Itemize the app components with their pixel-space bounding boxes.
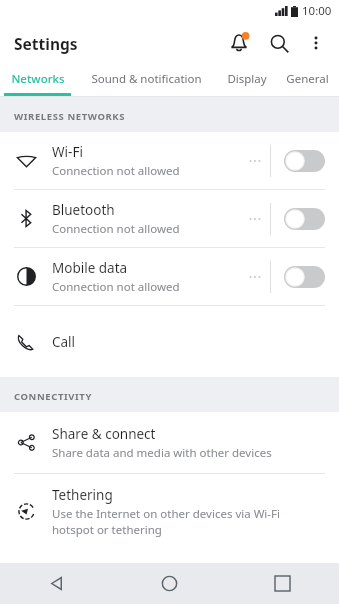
- button[interactable]: Search: [259, 23, 299, 63]
- button[interactable]: Networks: [0, 65, 75, 96]
- staticText: Wi-Fi: [52, 143, 83, 161]
- staticText: Connection not allowed: [52, 279, 180, 295]
- button[interactable]: Mobile data toggle: [284, 266, 325, 288]
- staticText: Settings: [14, 33, 78, 54]
- staticText: Use the Internet on other devices via Wi…: [52, 506, 309, 537]
- staticText: Connection not allowed: [52, 163, 180, 179]
- button[interactable]: Share & connect: [0, 412, 339, 473]
- button[interactable]: Sound & notification: [75, 65, 218, 96]
- staticText: 10:00: [302, 3, 332, 19]
- button[interactable]: Bluetooth toggle: [284, 208, 325, 230]
- staticText: WIRELESS NETWORKS: [14, 110, 126, 123]
- button[interactable]: Home: [113, 563, 226, 604]
- staticText: General: [286, 71, 329, 87]
- button[interactable]: Notifications: [219, 23, 259, 63]
- button[interactable]: More options: [299, 26, 333, 60]
- staticText: Share & connect: [52, 425, 156, 443]
- staticText: Tethering: [52, 486, 113, 504]
- staticText: Share data and media with other devices: [52, 445, 272, 461]
- button[interactable]: Wi-Fi: [0, 132, 339, 189]
- button[interactable]: Back: [0, 563, 113, 604]
- button[interactable]: Tethering: [0, 474, 339, 549]
- staticText: Networks: [11, 71, 65, 87]
- staticText: Call: [52, 333, 76, 351]
- staticText: Mobile data: [52, 259, 128, 277]
- button[interactable]: Wi-Fi toggle: [284, 150, 325, 172]
- staticText: Bluetooth: [52, 201, 115, 219]
- button[interactable]: Mobile data: [0, 248, 339, 305]
- staticText: Display: [227, 71, 267, 87]
- button[interactable]: Display: [218, 65, 275, 96]
- button[interactable]: Recent apps: [226, 563, 339, 604]
- button[interactable]: Call: [0, 306, 339, 377]
- staticText: Connection not allowed: [52, 221, 180, 237]
- button[interactable]: General: [275, 65, 339, 96]
- staticText: Sound & notification: [91, 71, 202, 87]
- staticText: CONNECTIVITY: [14, 390, 92, 403]
- button[interactable]: Bluetooth: [0, 190, 339, 247]
